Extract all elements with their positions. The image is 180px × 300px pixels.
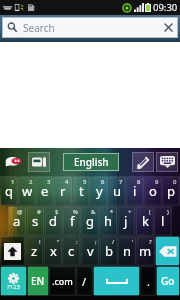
button[interactable]: b [99,236,118,266]
staticText: f [70,212,75,230]
staticText: / [112,238,115,246]
button[interactable]: s [26,206,44,236]
staticText: . [147,274,150,289]
staticText: p [167,182,175,200]
button[interactable]: m [136,236,155,266]
staticText: 1 [11,178,15,186]
staticText: ( [149,208,151,216]
staticText: 2 [29,178,33,186]
staticText: Search [23,21,55,35]
staticText: 6 [101,178,105,186]
staticText: ? [149,238,152,246]
staticText: h [104,212,113,230]
button[interactable]: Handwriting [132,152,154,172]
button[interactable]: e [36,176,54,206]
button[interactable]: q [0,176,18,206]
staticText: c [68,242,75,260]
staticText: 4 [65,178,69,186]
other: Clear [164,23,173,32]
button[interactable]: c [62,236,81,266]
button[interactable]: Space [93,266,140,296]
button[interactable]: r [54,176,72,206]
button[interactable]: u [108,176,126,206]
staticText: o [149,182,157,200]
staticText: d [49,212,57,230]
staticText: w [22,182,33,200]
staticText: 7 [119,178,123,186]
staticText: / [82,274,87,289]
staticText: t [79,182,84,200]
button[interactable]: Emoji [2,151,26,173]
button[interactable]: i [126,176,144,206]
button[interactable]: Go [156,266,180,296]
button[interactable]: z [25,236,44,266]
staticText: ' [132,238,134,246]
button[interactable]: g [81,206,99,236]
staticText: : [76,238,78,246]
button[interactable]: f [63,206,81,236]
staticText: j [124,212,128,230]
button[interactable]: n [118,236,137,266]
staticText: .com [52,275,73,287]
staticText: s [32,212,39,230]
staticText: 0 [173,178,177,186]
staticText: % [73,208,78,216]
staticText: r [60,182,66,200]
staticText: 9 [155,178,159,186]
staticText: English [74,155,109,169]
staticText: 8 [137,178,141,186]
staticText: " [57,238,60,246]
staticText: ) [167,208,169,216]
staticText: m [139,242,152,260]
button[interactable]: Keyboard layout [156,152,178,172]
staticText: y [96,182,103,200]
button[interactable]: x [44,236,63,266]
button[interactable]: d [44,206,62,236]
button[interactable]: a [8,206,26,236]
staticText: z [31,242,38,260]
staticText: + [128,208,132,216]
button[interactable]: . [140,266,156,296]
staticText: EN [31,274,45,288]
button[interactable]: p [162,176,180,206]
staticText: l [161,212,165,230]
staticText: n [123,242,132,260]
staticText: & [91,208,96,216]
button[interactable]: English [63,153,119,171]
staticText: ! [39,238,41,246]
button[interactable]: Backspace [155,236,180,266]
staticText: ; [95,238,97,246]
button[interactable]: v [81,236,100,266]
staticText: 09:30 [153,1,178,14]
button[interactable]: .com [49,266,76,296]
button[interactable]: w [18,176,36,206]
staticText: # [37,208,41,216]
staticText: v [87,242,94,260]
staticText: $ [55,208,59,216]
staticText: ?123 [7,283,20,291]
staticText: a [13,212,21,230]
button[interactable]: EN [27,266,49,296]
staticText: @ [17,208,23,216]
button[interactable]: o [144,176,162,206]
staticText: k [142,212,149,230]
staticText: q [5,182,13,200]
button[interactable]: j [117,206,135,236]
button[interactable]: Search [2,17,178,38]
staticText: b [105,242,113,260]
button[interactable]: Symbols [0,266,27,296]
staticText: 3 [47,178,51,186]
staticText: 5 [83,178,87,186]
button[interactable]: k [136,206,154,236]
button[interactable]: y [90,176,108,206]
button[interactable]: Clipboard [28,152,50,172]
button[interactable]: / [76,266,93,296]
button[interactable]: Shift [0,236,25,266]
button[interactable]: h [99,206,117,236]
staticText: Go [161,274,175,288]
button[interactable]: l [154,206,172,236]
staticText: x [50,242,57,260]
button[interactable]: t [72,176,90,206]
staticText: e [41,182,49,200]
staticText: u [113,182,122,200]
